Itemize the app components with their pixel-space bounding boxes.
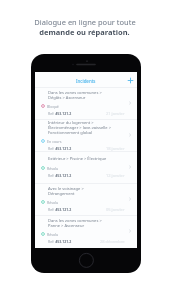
staticText: Dialogue en ligne pour toute (34, 17, 136, 27)
staticText: Dans les zones communes > Dégâts > Ascen… (48, 90, 102, 100)
staticText: 28 décembre (100, 239, 125, 244)
staticText: Résolu (47, 166, 59, 171)
staticText: Avec le voisinage > Dérangement (48, 186, 84, 196)
button[interactable]: Avec le voisinage > Dérangement (35, 183, 137, 215)
button[interactable]: Intérieur du logement > Électroménager >… (35, 119, 137, 151)
staticText: Bloqué (47, 104, 59, 109)
staticText: Ref: 453.121.2 (48, 239, 72, 244)
staticText: Ref: 453.121.2 (48, 207, 72, 212)
staticText: Extérieur > Piscine > Électrique (48, 156, 107, 162)
staticText: Ref: 453.121.2 (48, 146, 72, 151)
staticText: Dans les zones communes > Panne > Ascens… (48, 218, 102, 228)
staticText: 18 janvier (106, 146, 125, 151)
staticText: demande ou réparation. (39, 27, 130, 37)
staticText: 05 janvier (106, 207, 125, 212)
staticText: 21 janvier (106, 111, 125, 116)
staticText: Résolu (47, 232, 59, 237)
button[interactable]: Dans les zones communes > Panne > Ascens… (35, 215, 137, 247)
button[interactable]: Extérieur > Piscine > Électrique (35, 151, 137, 183)
staticText: En cours (47, 139, 62, 144)
staticText: Intérieur du logement > Électroménager >… (48, 120, 111, 135)
staticText: Incidents (76, 78, 96, 84)
staticText: Ref: 453.121.2 (48, 173, 72, 178)
button[interactable]: Dans les zones communes > Dégâts > Ascen… (35, 87, 137, 119)
staticText: Résolu (47, 200, 59, 205)
button[interactable]: Ajouter un incident (126, 76, 135, 85)
staticText: 12 janvier (106, 173, 125, 178)
staticText: Ref: 453.121.2 (48, 111, 72, 116)
